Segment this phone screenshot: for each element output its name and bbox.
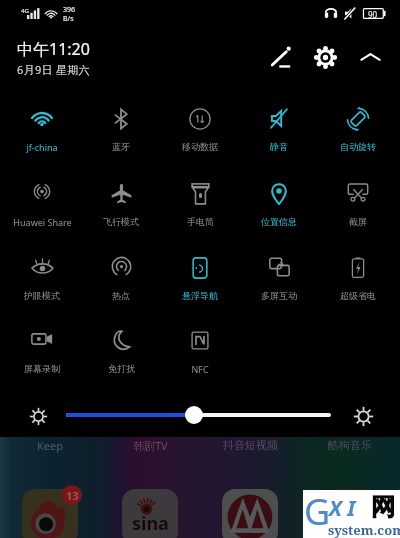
staticText: Huawei Share <box>13 216 72 228</box>
staticText: G <box>304 487 331 535</box>
staticText: 静音 <box>270 141 288 152</box>
staticText: 396 <box>63 5 76 15</box>
staticText: 6月9日 星期六 <box>17 62 90 77</box>
button[interactable]: 多屏互动 <box>240 247 318 309</box>
staticText: 抖音短视频 <box>223 438 278 452</box>
staticText: 蓝牙 <box>112 141 130 152</box>
staticText: 13 <box>66 488 79 503</box>
staticText: jf-china <box>26 141 58 153</box>
staticText: 韩剧TV <box>133 438 168 453</box>
staticText: 位置信息 <box>261 216 297 227</box>
staticText: 护眼模式 <box>24 290 60 301</box>
staticText: 多屏互动 <box>261 290 297 301</box>
button[interactable]: 手电筒 <box>161 173 239 235</box>
staticText: sina <box>132 511 169 536</box>
button[interactable]: Weibo <box>22 489 78 538</box>
staticText: 90 <box>368 9 378 20</box>
staticText: 网 <box>371 492 395 522</box>
staticText: B/s <box>63 14 74 24</box>
staticText: 截屏 <box>349 216 367 227</box>
staticText: 酷狗音乐 <box>328 438 372 452</box>
staticText: X I <box>329 494 356 523</box>
button[interactable]: 截屏 <box>319 173 397 235</box>
button[interactable]: NFC <box>161 321 239 383</box>
button[interactable]: Edit quick settings <box>261 37 301 77</box>
button[interactable]: Decrease brightness <box>26 404 50 428</box>
staticText: 超级省电 <box>340 290 376 301</box>
staticText: Keep <box>37 438 63 453</box>
staticText: 自动旋转 <box>340 141 376 152</box>
staticText: 手电筒 <box>187 216 214 227</box>
staticText: 中午11:20 <box>17 38 90 60</box>
staticText: system.com <box>328 521 400 538</box>
staticText: NFC <box>191 363 209 375</box>
staticText: 屏幕录制 <box>24 363 60 374</box>
button[interactable]: 自动旋转 <box>319 98 397 160</box>
button[interactable]: 超级省电 <box>319 247 397 309</box>
button[interactable]: 蓝牙 <box>82 98 160 160</box>
button[interactable]: 飞行模式 <box>82 173 160 235</box>
button[interactable]: Settings <box>305 37 345 77</box>
button[interactable]: Huawei Share <box>3 173 81 235</box>
button[interactable]: 免打扰 <box>82 321 160 383</box>
button[interactable]: 护眼模式 <box>3 247 81 309</box>
button[interactable]: 热点 <box>82 247 160 309</box>
button[interactable]: Collapse panel <box>350 37 390 77</box>
staticText: 免打扰 <box>108 363 135 374</box>
button[interactable]: 悬浮导航 <box>161 247 239 309</box>
button[interactable]: 静音 <box>240 98 318 160</box>
staticText: 4G <box>21 7 29 15</box>
button[interactable]: 位置信息 <box>240 173 318 235</box>
button[interactable]: Xiaohongshu <box>322 489 378 538</box>
button[interactable]: Brightness slider <box>66 406 331 424</box>
button[interactable]: China Merchants Bank <box>222 489 278 538</box>
button[interactable]: jf-china <box>3 98 81 160</box>
button[interactable]: 移动数据 <box>161 98 239 160</box>
staticText: 热点 <box>112 290 130 301</box>
button[interactable]: Increase brightness <box>350 403 376 429</box>
staticText: 飞行模式 <box>103 216 139 227</box>
button[interactable]: Sina <box>122 489 178 538</box>
staticText: 移动数据 <box>182 141 218 152</box>
button[interactable]: 屏幕录制 <box>3 321 81 383</box>
staticText: 悬浮导航 <box>182 290 218 301</box>
